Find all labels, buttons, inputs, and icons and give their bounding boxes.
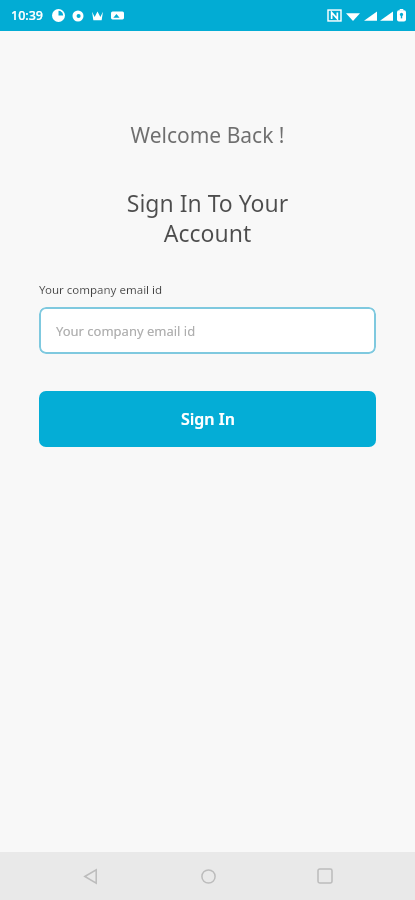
button[interactable]: Sign In (39, 391, 376, 447)
staticText: Your company email id (39, 282, 163, 298)
staticText: Sign In To Your Account (0, 187, 415, 249)
staticText: Welcome Back ! (0, 121, 415, 150)
staticText: Sign In (181, 408, 235, 430)
staticText: 10:39 (11, 7, 44, 24)
button[interactable]: Your company email id (39, 307, 376, 354)
button[interactable]: Recent apps (297, 852, 353, 900)
staticText: Your company email id (56, 322, 196, 340)
button[interactable]: Back (62, 852, 118, 900)
button[interactable]: Home (180, 852, 236, 900)
